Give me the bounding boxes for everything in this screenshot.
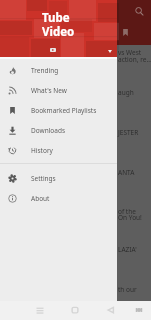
staticText: Settings	[31, 174, 56, 183]
button[interactable]: Bookmarked Playlists	[0, 100, 117, 120]
button[interactable]: What's New	[0, 80, 117, 100]
button[interactable]: Settings	[0, 168, 117, 188]
staticText: Downloads	[31, 126, 66, 135]
staticText: vs West	[118, 48, 142, 57]
button[interactable]: History	[0, 140, 117, 160]
button[interactable]: Recent apps	[34, 304, 46, 316]
staticText: History	[31, 146, 53, 155]
staticText: th our	[118, 285, 137, 294]
staticText: ANTA	[118, 168, 135, 177]
staticText: JESTER	[118, 128, 139, 137]
button[interactable]: Home	[69, 304, 81, 316]
staticText: augh	[118, 88, 134, 97]
staticText: action, re...	[118, 55, 151, 64]
button[interactable]: Bookmarks tab	[121, 28, 130, 37]
staticText: LAZIA'	[118, 245, 137, 254]
staticText: Trending	[31, 66, 59, 75]
staticText: Bookmarked Playlists	[31, 106, 97, 115]
staticText: On You!	[118, 213, 142, 222]
button[interactable]: Downloads	[0, 120, 117, 140]
staticText: What's New	[31, 86, 67, 95]
staticText: Tube Video	[42, 10, 75, 39]
button[interactable]: Back	[105, 304, 117, 316]
staticText: of the	[118, 207, 136, 216]
button[interactable]: Rotate screen	[133, 304, 145, 316]
button[interactable]: Search	[134, 6, 145, 17]
staticText: About	[31, 194, 50, 203]
button[interactable]: About	[0, 188, 117, 208]
button[interactable]: Trending	[0, 60, 117, 80]
